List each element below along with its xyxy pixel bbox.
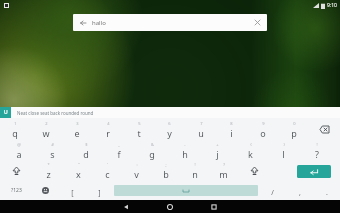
staticText: !	[316, 142, 318, 147]
button[interactable]: &	[135, 140, 168, 161]
button[interactable]: Clear	[253, 18, 262, 27]
staticText: "	[78, 162, 80, 167]
staticText: 1	[14, 121, 17, 126]
button[interactable]: Emoji	[32, 181, 59, 200]
staticText: m	[219, 168, 228, 180]
staticText: '	[107, 162, 108, 167]
staticText: U	[4, 109, 8, 116]
staticText: z	[46, 168, 51, 180]
button[interactable]: @	[2, 140, 36, 161]
staticText: 3	[76, 121, 79, 126]
button[interactable]: 1	[0, 119, 30, 140]
button[interactable]: 9	[247, 119, 278, 140]
staticText: _	[118, 142, 120, 147]
staticText: i	[230, 127, 233, 139]
staticText: [	[71, 188, 74, 198]
staticText: d	[83, 148, 89, 160]
staticText: y	[167, 127, 172, 139]
button[interactable]: !	[300, 140, 333, 161]
staticText: #	[51, 142, 54, 147]
staticText: f	[117, 148, 121, 160]
button[interactable]: 6	[154, 119, 185, 140]
staticText: l	[282, 148, 285, 160]
staticText: 4	[107, 121, 110, 126]
button[interactable]: Neat close seat back rounded round	[17, 107, 340, 118]
button[interactable]: '	[93, 161, 122, 181]
button[interactable]: #	[36, 140, 69, 161]
staticText: )	[283, 142, 285, 147]
staticText: n	[192, 168, 198, 180]
staticText: e	[74, 127, 80, 139]
button[interactable]: _	[102, 140, 135, 161]
staticText: (	[250, 142, 252, 147]
staticText: b	[163, 168, 169, 180]
button[interactable]: Enter	[297, 165, 331, 178]
button[interactable]: Backspace	[309, 119, 340, 140]
staticText: r	[106, 127, 110, 139]
staticText: s	[50, 148, 55, 160]
button[interactable]: Recents	[192, 200, 236, 213]
button[interactable]: !	[180, 161, 209, 181]
staticText: @	[17, 142, 21, 147]
button[interactable]: 0	[278, 119, 309, 140]
staticText: ?	[223, 162, 225, 167]
button[interactable]: Shift	[0, 161, 33, 181]
button[interactable]: ?	[209, 161, 238, 181]
button[interactable]: ;	[151, 161, 180, 181]
staticText: g	[149, 148, 155, 160]
staticText: ?	[315, 148, 319, 160]
staticText: /	[271, 188, 274, 198]
button[interactable]: 3	[61, 119, 92, 140]
staticText: p	[291, 127, 297, 139]
staticText: h	[182, 148, 188, 160]
button[interactable]: -	[168, 140, 201, 161]
button[interactable]: Home	[148, 200, 192, 213]
button[interactable]: 5	[123, 119, 154, 140]
staticText: 9	[262, 121, 265, 126]
button[interactable]: Back	[78, 18, 87, 27]
staticText: .	[326, 188, 328, 198]
staticText: ;	[165, 162, 167, 167]
button[interactable]: [	[59, 181, 86, 200]
staticText: ,	[299, 188, 301, 198]
staticText: &	[151, 142, 154, 147]
button[interactable]: Voice input	[0, 107, 11, 118]
button[interactable]: Space	[114, 185, 258, 196]
staticText: +	[216, 142, 219, 147]
staticText: !	[194, 162, 196, 167]
staticText: a	[16, 148, 22, 160]
button[interactable]: 7	[185, 119, 216, 140]
staticText: 8	[230, 121, 233, 126]
staticText: $	[85, 142, 88, 147]
button[interactable]: 8	[216, 119, 247, 140]
button[interactable]: +	[201, 140, 234, 161]
button[interactable]: ,	[286, 181, 313, 200]
button[interactable]: $	[69, 140, 102, 161]
button[interactable]: :	[122, 161, 151, 181]
staticText: q	[12, 127, 18, 139]
staticText: v	[134, 168, 139, 180]
staticText: 9:10	[327, 2, 337, 9]
staticText: :	[136, 162, 138, 167]
button[interactable]: (	[234, 140, 267, 161]
staticText: c	[105, 168, 110, 180]
staticText: 2	[45, 121, 48, 126]
button[interactable]: "	[63, 161, 93, 181]
staticText: ]	[98, 188, 101, 198]
staticText: hallo	[92, 19, 106, 27]
button[interactable]: 2	[30, 119, 61, 140]
button[interactable]: Back	[104, 200, 148, 213]
button[interactable]: ]	[86, 181, 113, 200]
staticText: *	[47, 162, 50, 167]
button[interactable]: Back	[73, 14, 267, 31]
button[interactable]: 4	[92, 119, 123, 140]
button[interactable]: ?123	[0, 181, 32, 200]
button[interactable]: Shift	[238, 161, 270, 181]
staticText: -	[184, 142, 186, 147]
staticText: Neat close seat back rounded round	[17, 110, 94, 116]
staticText: 5	[138, 121, 141, 126]
button[interactable]: /	[259, 181, 286, 200]
button[interactable]: )	[267, 140, 300, 161]
button[interactable]: *	[33, 161, 63, 181]
